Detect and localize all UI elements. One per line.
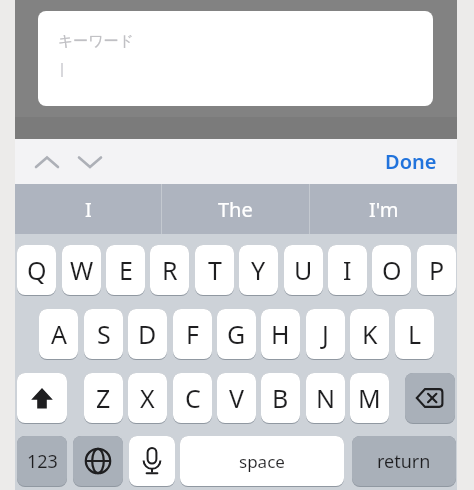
button[interactable]: N [306,373,345,423]
button[interactable]: D [128,309,167,359]
button[interactable]: space [180,436,344,486]
staticText: I'm [369,196,399,223]
button[interactable]: P [417,245,456,295]
staticText: P [429,253,445,287]
button[interactable]: J [306,309,345,359]
button[interactable]: E [106,245,145,295]
staticText: space [239,450,285,473]
staticText: return [377,449,431,474]
staticText: N [316,381,336,415]
staticText: F [186,317,199,351]
button[interactable]: Done [385,139,437,184]
staticText: キーワード [58,32,135,51]
button[interactable]: S [84,309,123,359]
button[interactable]: キーワード [38,11,433,106]
staticText: L [408,317,422,351]
staticText: B [272,381,289,415]
button[interactable]: I'm [310,184,457,234]
staticText: S [97,317,111,351]
staticText: J [322,317,329,351]
staticText: I [85,196,92,223]
button[interactable]: G [217,309,256,359]
button[interactable]: Z [84,373,123,423]
staticText: R [162,253,178,287]
staticText: U [294,253,313,287]
staticText: O [382,253,402,287]
button[interactable]: R [150,245,189,295]
staticText: 123 [27,449,58,474]
button[interactable]: M [350,373,389,423]
button[interactable]: B [261,373,300,423]
button[interactable]: H [261,309,300,359]
button[interactable] [405,373,455,423]
staticText: H [271,317,290,351]
button[interactable]: F [173,309,212,359]
button[interactable] [29,148,65,176]
staticText: Z [96,381,111,415]
staticText: E [119,253,133,287]
staticText: The [218,196,253,223]
staticText: T [208,253,222,287]
button[interactable]: C [173,373,212,423]
staticText: Q [27,253,47,287]
staticText: A [51,317,67,351]
button[interactable]: T [195,245,234,295]
button[interactable]: L [395,309,434,359]
staticText: I [343,253,352,287]
button[interactable]: A [39,309,78,359]
button[interactable]: O [372,245,411,295]
staticText: C [185,381,201,415]
button[interactable] [129,436,175,486]
staticText: V [229,381,245,415]
button[interactable]: K [350,309,389,359]
button[interactable]: I [328,245,367,295]
staticText: D [138,317,157,351]
button[interactable] [72,148,108,176]
button[interactable]: U [284,245,323,295]
button[interactable]: Q [17,245,56,295]
button[interactable]: The [162,184,309,234]
button[interactable] [73,436,123,486]
button[interactable]: Y [239,245,278,295]
staticText: K [362,317,378,351]
button[interactable]: I [15,184,161,234]
button[interactable]: W [62,245,101,295]
staticText: X [140,381,155,415]
button[interactable]: 123 [17,436,67,486]
staticText: Y [251,253,266,287]
staticText: Done [385,148,437,175]
button[interactable]: X [128,373,167,423]
staticText: W [70,253,94,287]
staticText: M [358,381,381,415]
staticText: G [227,317,246,351]
button[interactable] [17,373,67,423]
button[interactable]: V [217,373,256,423]
button[interactable]: return [352,436,456,486]
